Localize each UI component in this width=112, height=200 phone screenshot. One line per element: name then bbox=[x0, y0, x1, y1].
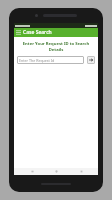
staticText: Enter The Request Id bbox=[19, 58, 55, 63]
button[interactable]: Recent apps bbox=[74, 168, 88, 175]
button[interactable]: Enter The Request Id bbox=[17, 56, 84, 64]
button[interactable]: Open navigation menu bbox=[14, 28, 23, 37]
button[interactable]: Home bbox=[49, 168, 63, 175]
staticText: Case Search bbox=[23, 29, 52, 36]
button[interactable]: Search bbox=[87, 56, 95, 64]
staticText: Enter Your Request ID to Search Details bbox=[16, 41, 96, 52]
button[interactable]: Back bbox=[25, 168, 39, 175]
